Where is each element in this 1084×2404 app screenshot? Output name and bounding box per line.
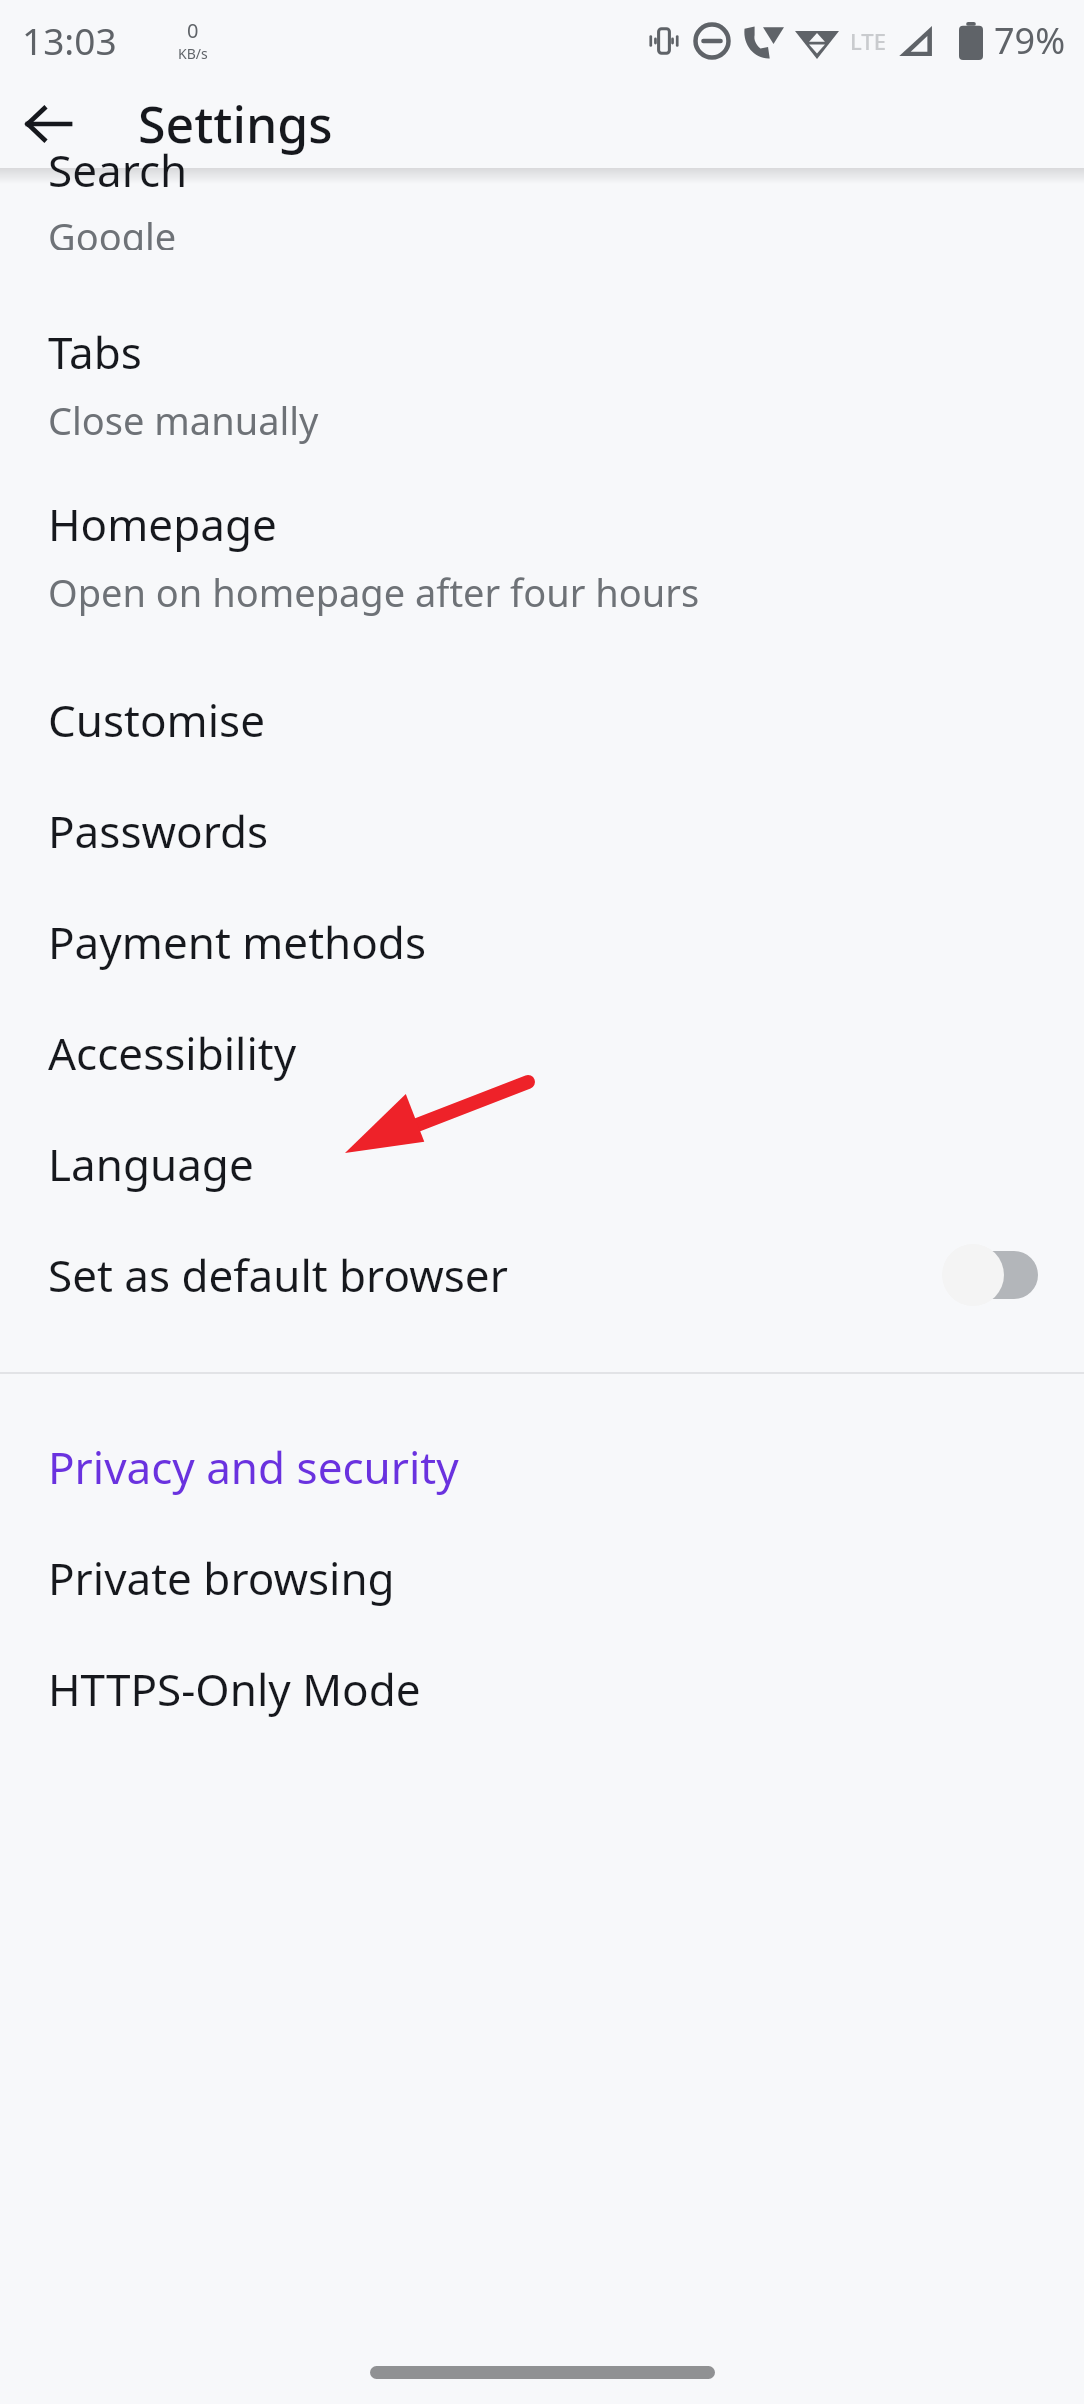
button[interactable]: Tabs: [0, 278, 1084, 452]
staticText: KB/s: [178, 44, 208, 63]
button[interactable]: Payment methods: [0, 886, 1084, 997]
staticText: Accessibility: [48, 1023, 297, 1083]
button[interactable]: Accessibility: [0, 997, 1084, 1108]
button[interactable]: HTTPS-Only Mode: [0, 1633, 1084, 1744]
staticText: 13:03: [22, 15, 117, 65]
button[interactable]: Search: [0, 168, 1084, 278]
staticText: Tabs: [48, 322, 142, 382]
staticText: Passwords: [48, 801, 269, 861]
staticText: Customise: [48, 690, 265, 750]
staticText: Set as default browser: [48, 1245, 942, 1305]
staticText: Payment methods: [48, 912, 427, 972]
button[interactable]: Passwords: [0, 775, 1084, 886]
button[interactable]: Language: [0, 1108, 1084, 1219]
button[interactable]: Homepage: [0, 452, 1084, 624]
staticText: Homepage: [48, 494, 277, 554]
button[interactable]: Privacy and security: [0, 1412, 1084, 1522]
staticText: LTE: [850, 26, 886, 56]
button[interactable]: Set as default browser: [0, 1219, 1084, 1330]
staticText: Open on homepage after four hours: [48, 566, 700, 618]
staticText: Close manually: [48, 394, 319, 446]
staticText: Google: [48, 210, 177, 250]
staticText: Privacy and security: [48, 1437, 459, 1497]
button[interactable]: Back: [0, 80, 96, 168]
staticText: HTTPS-Only Mode: [48, 1659, 421, 1719]
staticText: Private browsing: [48, 1548, 395, 1608]
staticText: Search: [48, 140, 188, 200]
staticText: 0: [187, 17, 199, 44]
staticText: Settings: [138, 90, 333, 158]
staticText: 79%: [994, 16, 1066, 65]
staticText: Language: [48, 1134, 254, 1194]
button[interactable]: Customise: [0, 664, 1084, 775]
button[interactable]: Private browsing: [0, 1522, 1084, 1633]
